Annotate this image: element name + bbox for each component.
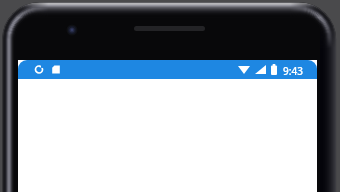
staticText: 9:43 [283, 64, 303, 78]
